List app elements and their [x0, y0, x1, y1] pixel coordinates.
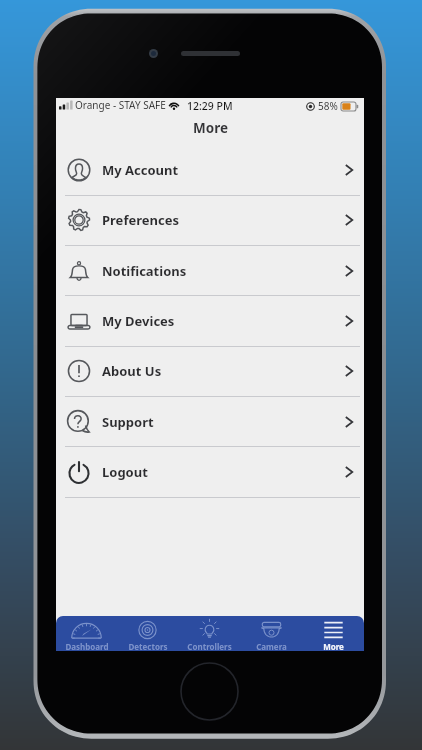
- button[interactable]: Preferences: [56, 195, 364, 245]
- staticText: Detectors: [128, 641, 168, 651]
- button[interactable]: Camera: [240, 616, 302, 651]
- staticText: My Devices: [102, 312, 175, 330]
- button[interactable]: My Account: [56, 145, 364, 195]
- staticText: Camera: [256, 641, 287, 651]
- staticText: 12:29 PM: [187, 99, 233, 113]
- button[interactable]: Logout: [56, 447, 364, 497]
- staticText: Controllers: [187, 641, 232, 651]
- button[interactable]: About Us: [56, 346, 364, 396]
- staticText: More: [193, 119, 228, 137]
- staticText: About Us: [102, 362, 162, 380]
- staticText: Notifications: [102, 262, 187, 280]
- button[interactable]: Controllers: [178, 616, 240, 651]
- button[interactable]: Notifications: [56, 246, 364, 296]
- staticText: More: [323, 641, 344, 651]
- staticText: Dashboard: [65, 641, 109, 651]
- button[interactable]: More: [302, 616, 364, 651]
- staticText: Orange - STAY SAFE: [75, 98, 166, 112]
- staticText: Logout: [102, 463, 148, 481]
- staticText: Support: [102, 413, 154, 431]
- staticText: My Account: [102, 161, 179, 179]
- button[interactable]: Support: [56, 397, 364, 447]
- staticText: 58%: [318, 99, 338, 113]
- staticText: Preferences: [102, 211, 179, 229]
- button[interactable]: My Devices: [56, 296, 364, 346]
- button[interactable]: Dashboard: [56, 616, 117, 651]
- button[interactable]: Detectors: [117, 616, 178, 651]
